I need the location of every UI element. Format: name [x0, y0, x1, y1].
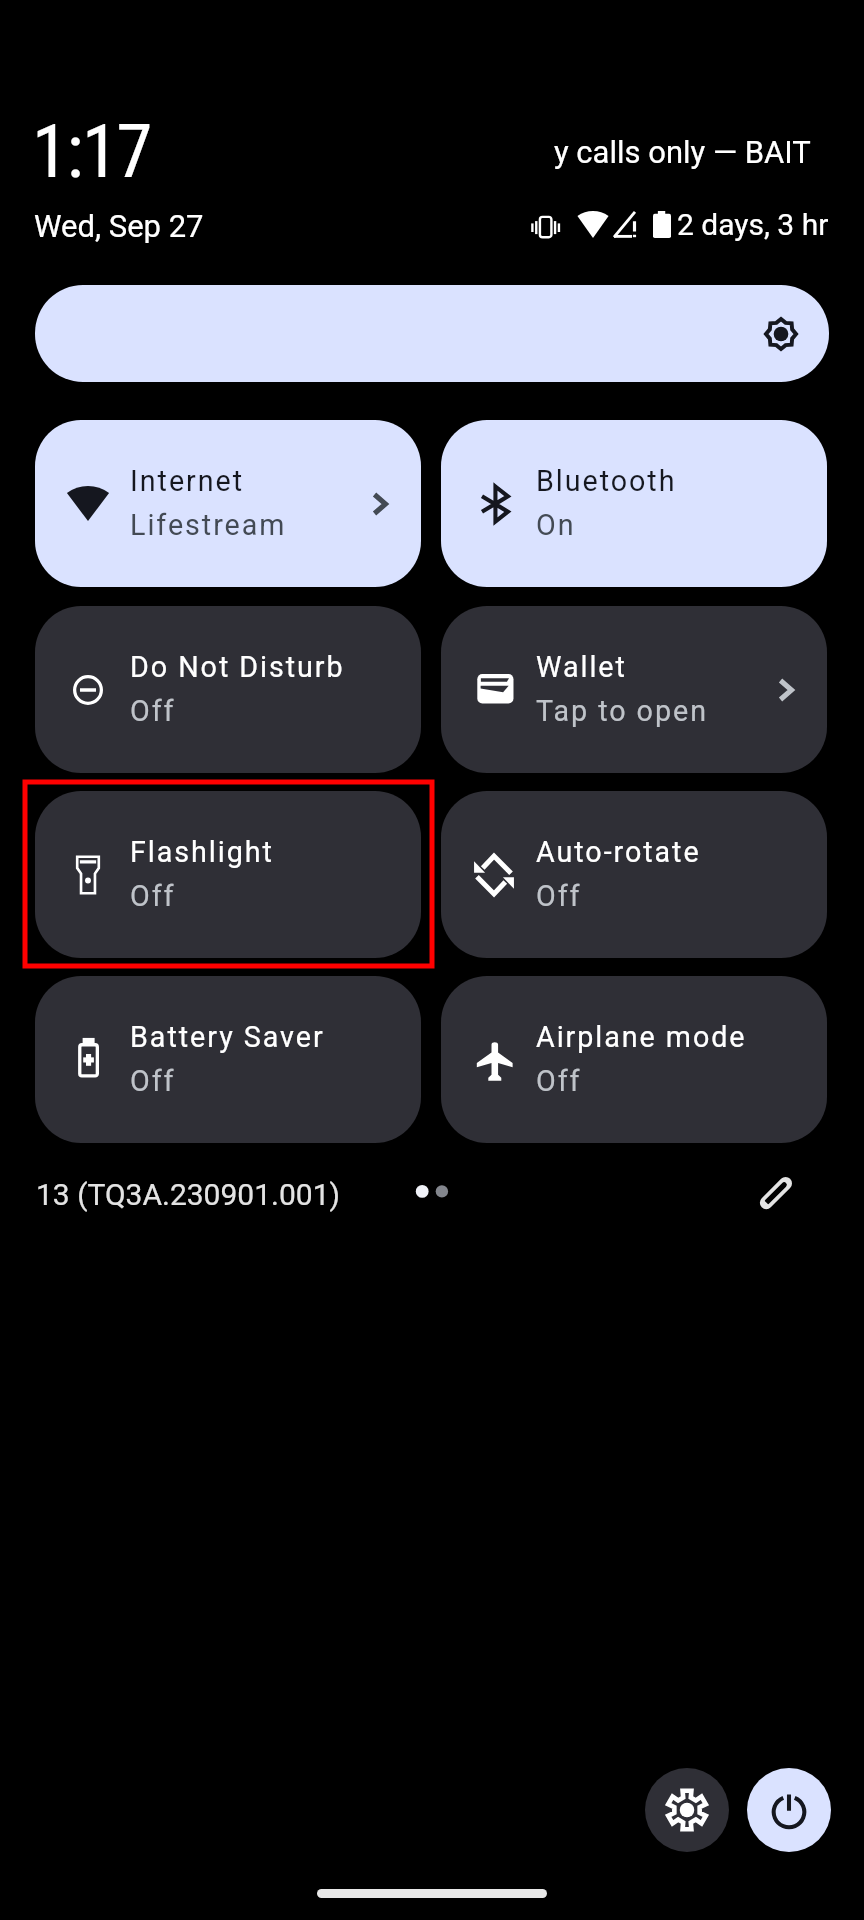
- button[interactable]: Battery Saver: [35, 976, 421, 1143]
- staticText: 2 days, 3 hr: [677, 207, 829, 242]
- button[interactable]: Bluetooth: [441, 420, 827, 587]
- button[interactable]: Auto-rotate: [441, 791, 827, 958]
- staticText: Auto-rotate: [536, 835, 701, 869]
- staticText: Tap to open: [536, 694, 708, 728]
- button[interactable]: Flashlight: [35, 791, 421, 958]
- staticText: Flashlight: [130, 835, 274, 869]
- staticText: Do Not Disturb: [130, 650, 345, 684]
- staticText: Battery Saver: [130, 1020, 325, 1054]
- staticText: 1:17: [32, 109, 151, 195]
- staticText: Off: [130, 694, 176, 728]
- button[interactable]: Brightness: [35, 285, 829, 382]
- button[interactable]: Internet: [35, 420, 421, 587]
- button[interactable]: Wallet: [441, 606, 827, 773]
- button[interactable]: Edit tiles: [744, 1161, 808, 1225]
- button[interactable]: Airplane mode: [441, 976, 827, 1143]
- staticText: Airplane mode: [536, 1020, 747, 1054]
- button[interactable]: Do Not Disturb: [35, 606, 421, 773]
- button[interactable]: Settings: [645, 1768, 729, 1852]
- staticText: Off: [536, 879, 582, 913]
- staticText: y calls only — BAIT: [554, 134, 811, 170]
- staticText: Off: [536, 1064, 582, 1098]
- staticText: Off: [130, 879, 176, 913]
- button[interactable]: Power: [747, 1768, 831, 1852]
- staticText: Lifestream: [130, 508, 287, 542]
- staticText: Bluetooth: [536, 464, 677, 498]
- staticText: Wallet: [536, 650, 627, 684]
- staticText: Internet: [130, 464, 245, 498]
- staticText: On: [536, 508, 576, 542]
- staticText: Wed, Sep 27: [34, 208, 204, 244]
- staticText: 13 (TQ3A.230901.001): [36, 1177, 340, 1212]
- staticText: Off: [130, 1064, 176, 1098]
